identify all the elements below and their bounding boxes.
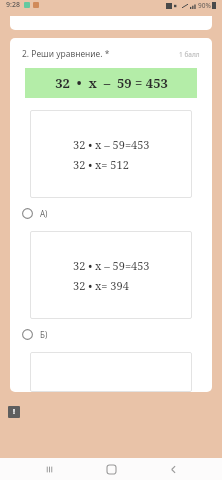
staticText: 2. Реши уравнение. *: [22, 48, 110, 60]
button[interactable]: Home: [98, 458, 124, 480]
staticText: 9:28: [6, 0, 20, 10]
staticText: 90%: [198, 1, 211, 10]
button[interactable]: А): [22, 208, 200, 219]
button[interactable]: Back: [160, 458, 186, 480]
button[interactable]: 2. Реши уравнение. *: [10, 38, 212, 392]
button[interactable]: Info: [8, 406, 20, 418]
staticText: 1 балл: [179, 50, 200, 59]
button[interactable]: Recents: [36, 458, 62, 480]
button[interactable]: 32 • x – 59=453: [30, 110, 192, 198]
staticText: 32 • x – 59=453: [73, 137, 150, 152]
staticText: 32 • x= 394: [73, 278, 129, 293]
staticText: !: [13, 407, 15, 417]
button[interactable]: [30, 352, 192, 392]
staticText: 32 • x – 59=453: [73, 258, 150, 273]
button[interactable]: 32 • x – 59=453: [30, 231, 192, 319]
staticText: 32 • x – 59 = 453: [55, 74, 168, 92]
staticText: 32 • x= 512: [73, 157, 129, 172]
staticText: Б): [40, 329, 48, 340]
button[interactable]: Б): [22, 329, 200, 340]
staticText: А): [40, 208, 48, 219]
